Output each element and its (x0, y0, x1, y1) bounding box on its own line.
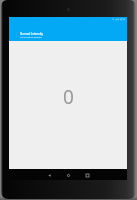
staticText: Normal Intensity (20, 32, 44, 36)
button[interactable]: Recent apps (78, 170, 97, 180)
button[interactable]: Back (40, 170, 59, 180)
staticText: 0 (63, 84, 74, 110)
button[interactable]: Home (59, 170, 78, 180)
button[interactable]: Normal Intensity (9, 22, 127, 41)
staticText: Tap to change intensity (20, 36, 42, 39)
